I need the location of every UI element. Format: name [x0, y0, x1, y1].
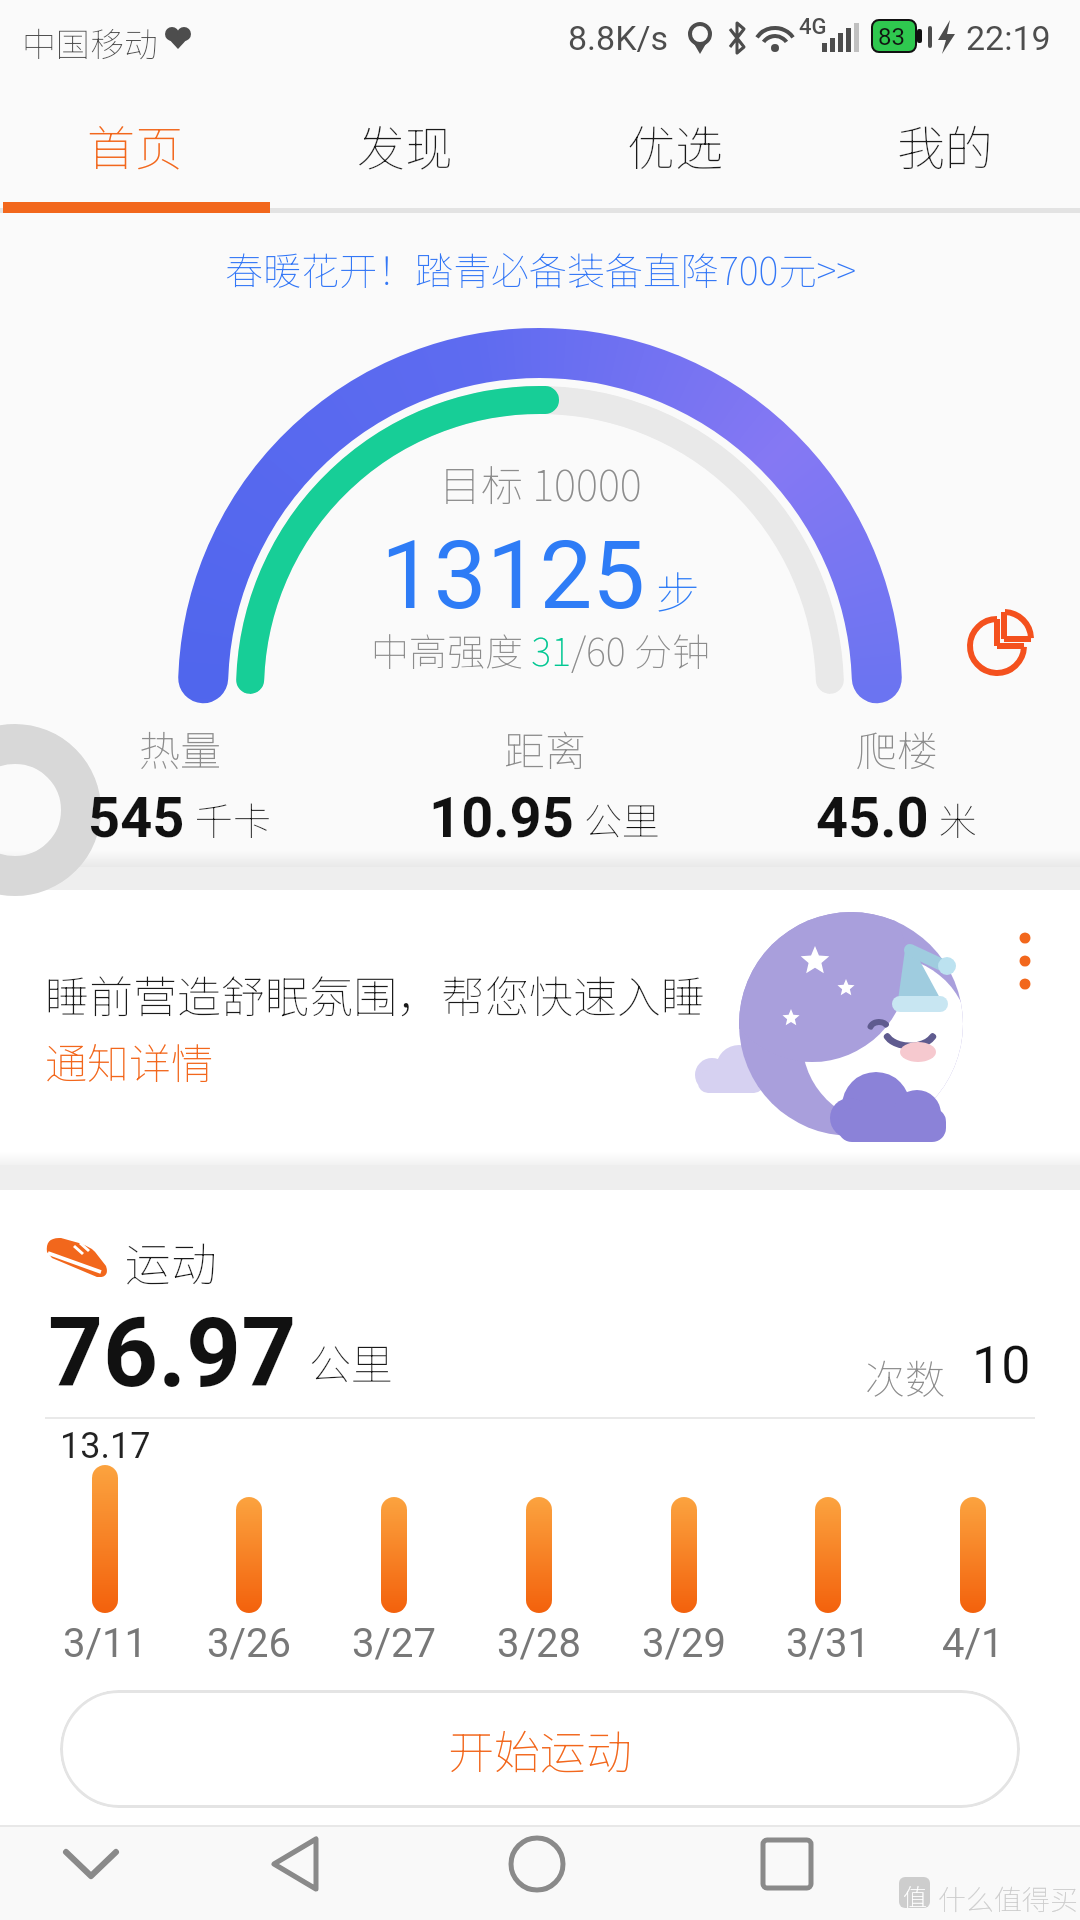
- button[interactable]: [1000, 925, 1050, 997]
- staticText: 首页: [87, 110, 184, 180]
- staticText: 运动: [125, 1228, 217, 1295]
- staticText: 13.17: [60, 1425, 151, 1467]
- staticText: 公里: [584, 791, 661, 846]
- button[interactable]: [240, 1825, 350, 1920]
- staticText: 发现: [357, 110, 454, 180]
- staticText: 我的: [897, 110, 994, 180]
- staticText: 3/11: [63, 1620, 147, 1667]
- button[interactable]: 通知详情: [45, 1030, 214, 1090]
- staticText: 3/31: [786, 1620, 870, 1667]
- staticText: 开始运动: [448, 1716, 632, 1783]
- staticText: 通知详情: [45, 1030, 214, 1090]
- staticText: 公里: [309, 1331, 394, 1392]
- staticText: 76.97: [48, 1297, 297, 1410]
- button[interactable]: 春暖花开！踏青必备装备直降700元>>: [190, 238, 890, 298]
- button[interactable]: 优选: [540, 85, 810, 205]
- staticText: 45.0: [816, 785, 929, 851]
- staticText: 8.8K/s: [568, 18, 669, 58]
- staticText: 热量: [139, 718, 221, 777]
- staticText: 爬楼: [856, 718, 938, 777]
- staticText: 春暖花开！踏青必备装备直降700元>>: [225, 241, 856, 296]
- staticText: 3/26: [207, 1620, 291, 1667]
- staticText: 10: [972, 1335, 1031, 1396]
- staticText: 睡前营造舒眠氛围，帮您快速入睡: [45, 962, 705, 1026]
- staticText: 步: [656, 558, 700, 622]
- button[interactable]: 发现: [270, 85, 540, 205]
- staticText: 22:19: [966, 18, 1051, 58]
- staticText: 值: [903, 1878, 927, 1913]
- staticText: 83: [878, 23, 905, 51]
- staticText: 3/29: [642, 1620, 726, 1667]
- staticText: 优选: [627, 110, 724, 180]
- button[interactable]: [960, 616, 1032, 688]
- staticText: 13125: [381, 521, 646, 631]
- staticText: 距离: [504, 718, 586, 777]
- button[interactable]: [0, 890, 1080, 1165]
- staticText: 目标 10000: [439, 452, 642, 513]
- staticText: 次数: [865, 1348, 945, 1406]
- button[interactable]: 我的: [810, 85, 1080, 205]
- staticText: 中高强度 31/60 分钟: [371, 622, 710, 677]
- staticText: 中国移动: [22, 18, 158, 67]
- staticText: 什么值得买: [938, 1878, 1079, 1919]
- button[interactable]: [40, 1825, 150, 1920]
- button[interactable]: 开始运动: [60, 1690, 1020, 1808]
- staticText: 10.95: [429, 785, 574, 851]
- staticText: 4G: [799, 14, 827, 40]
- staticText: 千卡: [195, 791, 272, 846]
- staticText: 3/27: [352, 1620, 436, 1667]
- button[interactable]: 首页: [0, 85, 270, 205]
- staticText: 米: [939, 791, 978, 846]
- button[interactable]: [482, 1825, 592, 1920]
- staticText: 545: [88, 785, 185, 851]
- staticText: 4/1: [942, 1620, 1004, 1667]
- staticText: 3/28: [497, 1620, 581, 1667]
- button[interactable]: [732, 1825, 842, 1920]
